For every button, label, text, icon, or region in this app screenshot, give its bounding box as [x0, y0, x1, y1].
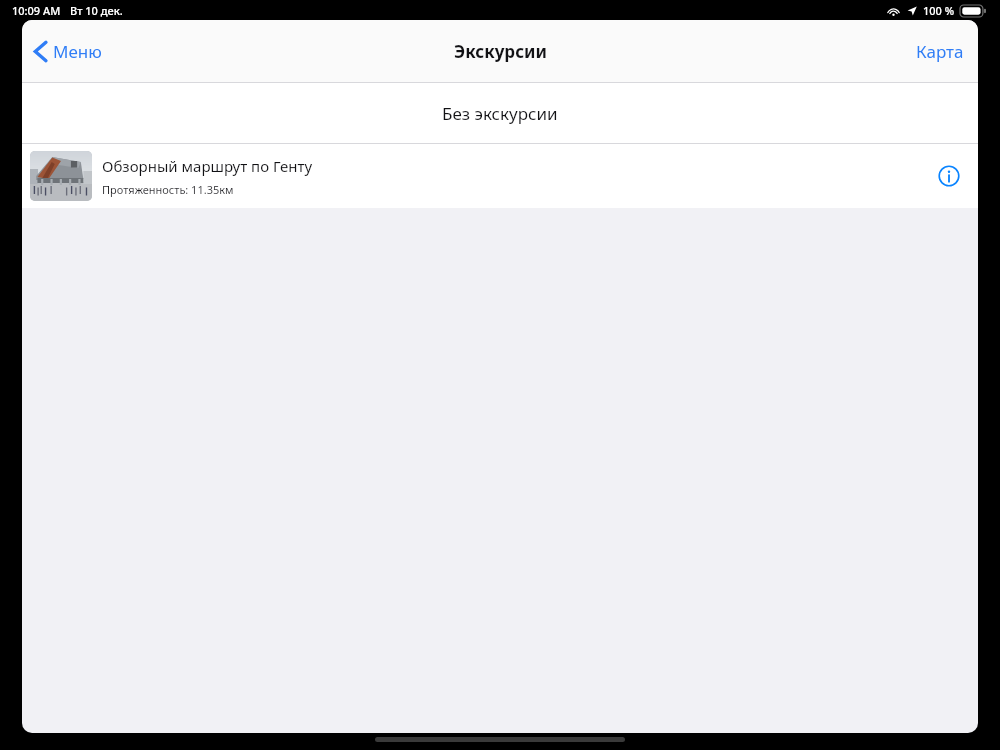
staticText: Без экскурсии [442, 102, 558, 125]
staticText: Карта [916, 40, 964, 63]
button[interactable]: Карта [902, 30, 978, 73]
staticText: Экскурсии [454, 40, 547, 63]
staticText: 10:09 AM [12, 3, 61, 18]
button[interactable]: Информация [934, 161, 964, 191]
staticText: Вт 10 дек. [70, 3, 123, 18]
staticText: 100 % [923, 3, 955, 18]
staticText: Обзорный маршрут по Генту [102, 156, 313, 176]
button[interactable]: Меню [22, 32, 112, 71]
button[interactable]: Обзорный маршрут по Генту [22, 144, 978, 208]
staticText: Протяженность: 11.35км [102, 182, 234, 197]
staticText: Меню [53, 40, 102, 63]
